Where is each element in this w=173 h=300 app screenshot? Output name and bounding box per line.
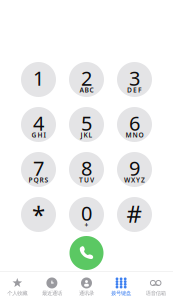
button[interactable]: 0	[69, 197, 104, 232]
staticText: J K L	[80, 131, 92, 139]
staticText: 拨号键盘	[111, 290, 131, 297]
staticText: *	[32, 199, 45, 230]
staticText: 最近通话	[42, 290, 62, 297]
staticText: 个人收藏	[7, 290, 27, 297]
button[interactable]: Call	[69, 236, 103, 270]
staticText: 语音信箱	[146, 290, 166, 297]
staticText: 4	[33, 110, 44, 136]
button[interactable]: 3	[117, 62, 152, 97]
button[interactable]: 个人收藏	[0, 274, 35, 300]
button[interactable]: 8	[69, 152, 104, 187]
button[interactable]: 1	[21, 62, 56, 97]
staticText: 1	[33, 65, 44, 91]
staticText: T U V	[79, 176, 94, 184]
staticText: 6	[129, 110, 140, 136]
staticText: 8	[81, 155, 92, 181]
staticText: 0	[81, 200, 92, 226]
staticText: 7	[33, 155, 44, 181]
staticText: P Q R S	[28, 176, 48, 184]
staticText: W X Y Z	[124, 176, 145, 184]
button[interactable]: 2	[69, 62, 104, 97]
button[interactable]: 通讯录	[69, 274, 104, 300]
button[interactable]: 5	[69, 107, 104, 142]
staticText: D E F	[127, 86, 142, 94]
button[interactable]: 最近通话	[35, 274, 69, 300]
button[interactable]: 4	[21, 107, 56, 142]
staticText: 通讯录	[79, 290, 94, 297]
button[interactable]: 7	[21, 152, 56, 187]
button[interactable]: 9	[117, 152, 152, 187]
button[interactable]: 6	[117, 107, 152, 142]
staticText: 2	[81, 65, 92, 91]
staticText: 3	[129, 65, 140, 91]
button[interactable]: #	[117, 197, 152, 232]
button[interactable]: *	[21, 197, 56, 232]
staticText: M N O	[125, 131, 143, 139]
staticText: G H I	[31, 131, 45, 139]
staticText: #	[126, 198, 142, 229]
button[interactable]: 拨号键盘	[104, 274, 138, 300]
staticText: 5	[81, 110, 92, 136]
staticText: +	[84, 221, 88, 229]
button[interactable]: 语音信箱	[138, 274, 173, 300]
staticText: 9	[129, 155, 140, 181]
staticText: A B C	[79, 86, 93, 94]
